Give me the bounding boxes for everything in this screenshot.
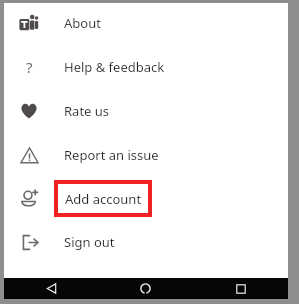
staticText: About xyxy=(64,14,101,32)
button[interactable]: ? xyxy=(4,47,288,87)
staticText: Report an issue xyxy=(64,146,159,164)
button[interactable]: About xyxy=(4,3,288,43)
button[interactable]: Rate us xyxy=(4,91,288,131)
button[interactable]: Add account xyxy=(4,178,288,218)
button[interactable]: Sign out xyxy=(4,222,288,262)
button[interactable]: Recent apps xyxy=(193,278,288,299)
staticText: Rate us xyxy=(64,102,110,120)
staticText: Help & feedback xyxy=(64,58,165,76)
button[interactable]: Home xyxy=(98,278,193,299)
button[interactable]: Back xyxy=(4,278,98,299)
staticText: ? xyxy=(26,57,33,77)
staticText: Add account xyxy=(65,190,142,208)
button[interactable]: Report an issue xyxy=(4,135,288,175)
staticText: Sign out xyxy=(64,233,115,251)
